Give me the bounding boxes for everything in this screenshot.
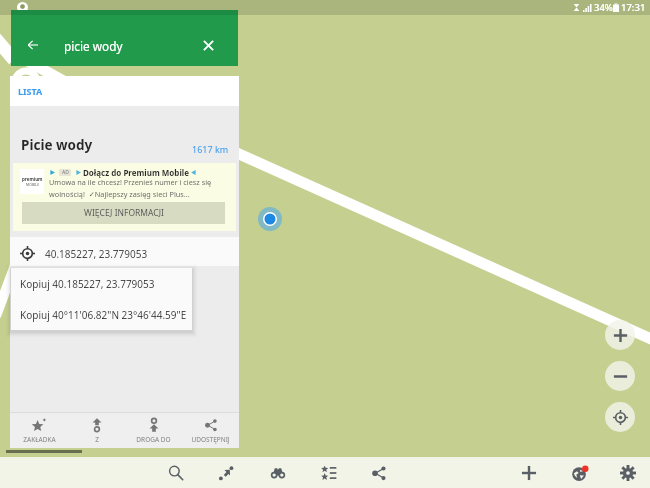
button[interactable]: Binoculars <box>262 457 293 488</box>
staticText: Dołącz do Premium Mobile <box>83 167 189 178</box>
staticText: picie wody <box>64 38 123 54</box>
staticText: Kopiuj 40°11'06.82"N 23°46'44.59"E <box>20 308 187 322</box>
button[interactable]: UDOSTĘPNIJ <box>182 413 239 448</box>
staticText: AD <box>62 169 69 176</box>
button[interactable]: DROGA DO <box>125 413 182 448</box>
button[interactable]: Kopiuj 40.185227, 23.779053 <box>11 268 192 299</box>
button[interactable]: Search <box>160 457 191 488</box>
button[interactable]: Zoom out <box>605 361 635 391</box>
button[interactable]: Back <box>12 24 54 66</box>
staticText: UDOSTĘPNIJ <box>191 435 230 444</box>
button[interactable]: Zoom in <box>605 320 635 350</box>
staticText: Picie wody <box>21 136 93 154</box>
staticText: 1617 km <box>192 143 229 155</box>
button[interactable]: Navigate <box>210 457 241 488</box>
staticText: 17:31 <box>621 1 646 14</box>
button[interactable]: Map layers <box>564 457 595 488</box>
staticText: 40.185227, 23.779053 <box>45 247 148 261</box>
button[interactable]: Z <box>68 413 125 448</box>
staticText: DROGA DO <box>136 435 171 444</box>
staticText: MOBILE <box>26 182 40 187</box>
button[interactable]: Favorites <box>313 457 344 488</box>
button[interactable]: WIĘCEJ INFORMACJI <box>22 202 225 224</box>
button[interactable]: Settings <box>612 457 643 488</box>
staticText: Z <box>95 435 99 444</box>
button[interactable]: LISTA <box>10 76 239 106</box>
button[interactable]: Share <box>363 457 394 488</box>
button[interactable]: premium <box>13 163 236 231</box>
staticText: premium <box>22 176 43 182</box>
staticText: wolnością! ✓Najlepszy zasięg sieci Plus.… <box>49 189 190 199</box>
button[interactable]: Back <box>11 10 238 66</box>
staticText: Umowa na ile chcesz! Przenieś numer i ci… <box>49 177 212 187</box>
staticText: LISTA <box>18 85 43 97</box>
button[interactable]: ZAKŁADKA <box>10 413 68 448</box>
button[interactable]: My location <box>605 402 635 432</box>
staticText: 34% <box>594 1 613 14</box>
button[interactable]: Add <box>513 457 544 488</box>
staticText: Kopiuj 40.185227, 23.779053 <box>20 277 155 291</box>
button[interactable]: Clear search <box>188 25 228 65</box>
staticText: WIĘCEJ INFORMACJI <box>84 207 164 219</box>
button[interactable]: 40.185227, 23.779053 <box>10 237 239 266</box>
staticText: ZAKŁADKA <box>23 435 56 444</box>
button[interactable]: Kopiuj 40°11'06.82"N 23°46'44.59"E <box>11 299 192 330</box>
